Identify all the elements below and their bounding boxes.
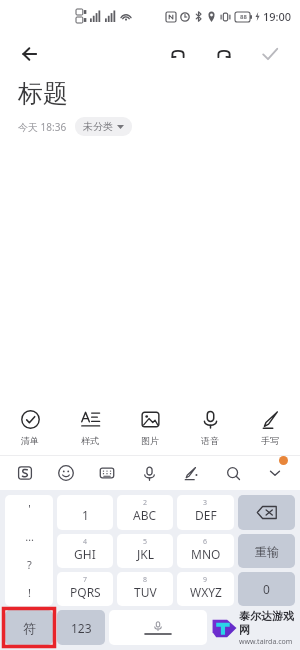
staticText: 9: [203, 575, 208, 585]
button[interactable]: Sogou input: [4, 456, 45, 490]
staticText: 4: [83, 537, 88, 547]
staticText: 3: [203, 498, 208, 508]
button[interactable]: Emoji: [45, 456, 86, 490]
button[interactable]: 清单: [0, 399, 60, 455]
staticText: 1: [82, 507, 89, 523]
staticText: 符: [23, 620, 36, 636]
staticText: 123: [71, 620, 92, 636]
staticText: MNO: [191, 546, 221, 562]
staticText: 6: [203, 537, 208, 547]
button[interactable]: 1: [57, 495, 113, 530]
staticText: ABC: [133, 507, 157, 523]
button[interactable]: Back: [10, 34, 50, 74]
staticText: 样式: [81, 435, 99, 446]
staticText: 88: [240, 13, 247, 21]
button[interactable]: 图片: [120, 399, 180, 455]
staticText: GHI: [74, 546, 96, 562]
button[interactable]: …: [5, 522, 53, 550]
staticText: 未分类: [83, 120, 113, 133]
button[interactable]: 2: [117, 495, 173, 530]
button[interactable]: Collapse keyboard: [254, 456, 296, 490]
staticText: JKL: [137, 546, 154, 562]
button[interactable]: Delete: [238, 495, 295, 530]
button[interactable]: Keyboard: [86, 456, 128, 490]
staticText: 手写: [261, 435, 279, 446]
staticText: 7: [83, 575, 88, 585]
button[interactable]: 0: [238, 572, 295, 606]
staticText: 清单: [21, 435, 39, 446]
button[interactable]: 6: [177, 534, 234, 568]
button[interactable]: 手写: [240, 399, 300, 455]
staticText: 19:00: [263, 9, 292, 24]
staticText: 图片: [141, 435, 159, 446]
staticText: !: [28, 585, 31, 600]
button[interactable]: 123: [57, 610, 105, 645]
button[interactable]: 8: [117, 572, 173, 606]
staticText: 5: [143, 537, 148, 547]
staticText: 2: [143, 498, 148, 508]
button[interactable]: 未分类: [75, 117, 132, 136]
button[interactable]: 样式: [60, 399, 120, 455]
staticText: 0: [263, 581, 270, 597]
button[interactable]: Search: [212, 456, 254, 490]
staticText: WXYZ: [190, 584, 222, 600]
staticText: 重输: [255, 544, 279, 559]
staticText: …: [25, 529, 34, 544]
button[interactable]: 3: [177, 495, 234, 530]
button[interactable]: 语音: [180, 399, 240, 455]
staticText: ?: [27, 557, 32, 572]
button[interactable]: Done: [250, 34, 290, 74]
button[interactable]: Voice input: [128, 456, 170, 490]
button[interactable]: !: [5, 578, 53, 606]
staticText: 泰尔达游戏网: [239, 609, 297, 637]
button[interactable]: 符: [5, 610, 53, 645]
button[interactable]: Redo: [204, 34, 244, 74]
staticText: PQRS: [70, 584, 101, 600]
staticText: www.tairda.com: [239, 637, 293, 647]
button[interactable]: Handwriting: [170, 456, 212, 490]
staticText: 今天 18:36: [18, 120, 67, 134]
button[interactable]: 5: [117, 534, 173, 568]
staticText: DEF: [195, 507, 217, 523]
button[interactable]: 4: [57, 534, 113, 568]
staticText: 标题: [18, 78, 68, 109]
button[interactable]: 7: [57, 572, 113, 606]
staticText: 8: [143, 575, 148, 585]
staticText: ': [28, 501, 31, 516]
button[interactable]: Undo: [158, 34, 198, 74]
button[interactable]: 9: [177, 572, 234, 606]
button[interactable]: ?: [5, 550, 53, 578]
button[interactable]: 重输: [238, 534, 295, 568]
button[interactable]: Space: [109, 610, 207, 645]
staticText: TUV: [134, 584, 157, 600]
staticText: 语音: [201, 435, 219, 446]
button[interactable]: ': [5, 495, 53, 522]
